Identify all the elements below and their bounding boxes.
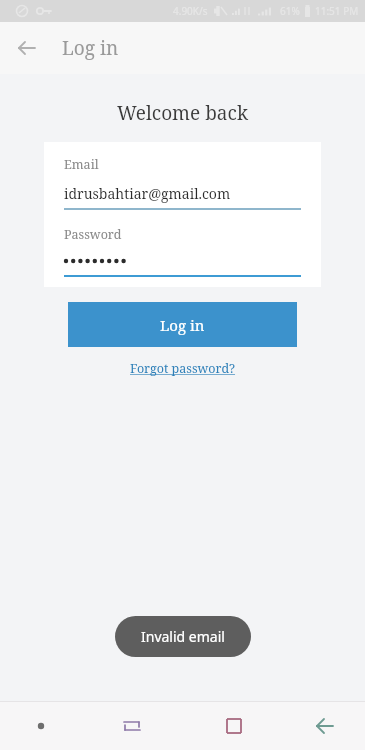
button[interactable]: Back: [285, 702, 365, 750]
button[interactable]: Recent apps: [81, 702, 183, 750]
staticText: Invalid email: [141, 627, 225, 646]
button[interactable]: Home: [0, 702, 81, 750]
button[interactable]: Forgot password?: [130, 360, 236, 377]
staticText: idrusbahtiar@gmail.com: [64, 184, 231, 203]
staticText: 61%: [280, 4, 300, 18]
staticText: 11:51 PM: [315, 4, 359, 18]
staticText: Email: [64, 156, 99, 173]
staticText: Welcome back: [117, 100, 249, 126]
button[interactable]: Overview: [183, 702, 285, 750]
staticText: Log in: [160, 315, 205, 335]
staticText: Log in: [62, 35, 119, 61]
button[interactable]: Back: [10, 31, 44, 65]
staticText: Password: [64, 226, 122, 243]
staticText: 4.90K/s: [173, 4, 208, 18]
button[interactable]: Log in: [68, 302, 297, 347]
button[interactable]: Invalid email: [115, 616, 251, 657]
